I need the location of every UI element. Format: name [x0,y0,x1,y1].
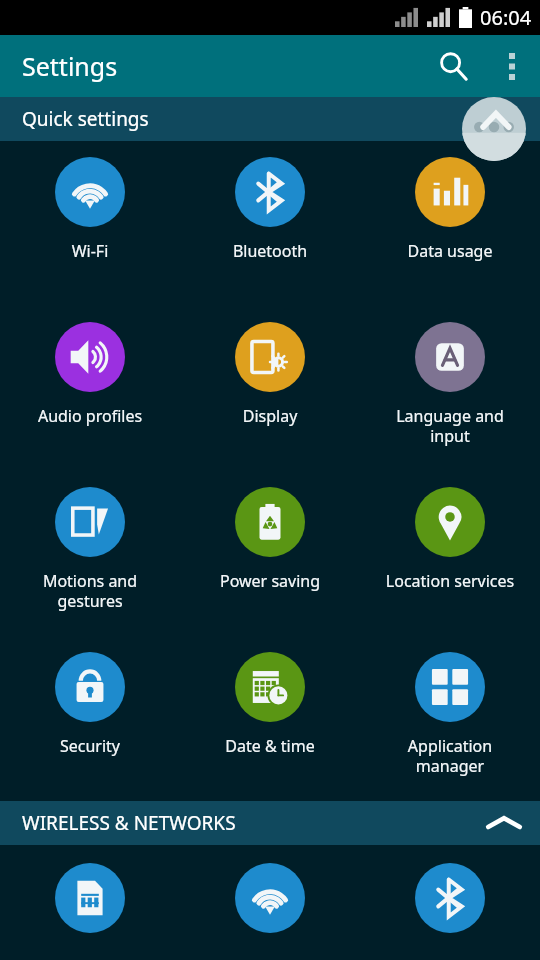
button[interactable]: Bluetooth [360,845,540,960]
button[interactable]: Security [0,636,180,801]
staticText: Quick settings [22,106,149,132]
staticText: Date & time [181,735,359,757]
staticText: Security [1,735,179,757]
staticText: Location services [361,570,539,592]
staticText: Display [181,405,359,427]
staticText: Data usage [361,240,539,262]
button[interactable]: Data usage [360,141,540,306]
button[interactable]: WIRELESS & NETWORKS [0,801,540,845]
staticText: WIRELESS & NETWORKS [22,810,236,836]
button[interactable]: Display [180,306,360,471]
staticText: Application manager [361,735,539,776]
staticText: Bluetooth [181,240,359,262]
button[interactable]: Motions and gestures [0,471,180,636]
button[interactable]: Audio profiles [0,306,180,471]
staticText: 06:04 [480,4,532,31]
button[interactable]: Wi-Fi [0,141,180,306]
button[interactable]: Home [462,97,526,161]
button[interactable]: Application manager [360,636,540,801]
staticText: Audio profiles [1,405,179,427]
button[interactable]: More options [484,38,540,94]
other: Collapse [486,813,522,833]
button[interactable]: Quick settings [0,97,540,141]
staticText: Settings [22,49,118,83]
staticText: Power saving [181,570,359,592]
button[interactable]: Language and input [360,306,540,471]
staticText: Wi-Fi [1,240,179,262]
button[interactable]: Wi-Fi [180,845,360,960]
button[interactable]: SIM cards [0,845,180,960]
button[interactable]: Location services [360,471,540,636]
button[interactable]: Search [422,35,484,97]
staticText: Motions and gestures [1,570,179,611]
button[interactable]: Date & time [180,636,360,801]
button[interactable]: Power saving [180,471,360,636]
staticText: Language and input [361,405,539,446]
button[interactable]: Bluetooth [180,141,360,306]
